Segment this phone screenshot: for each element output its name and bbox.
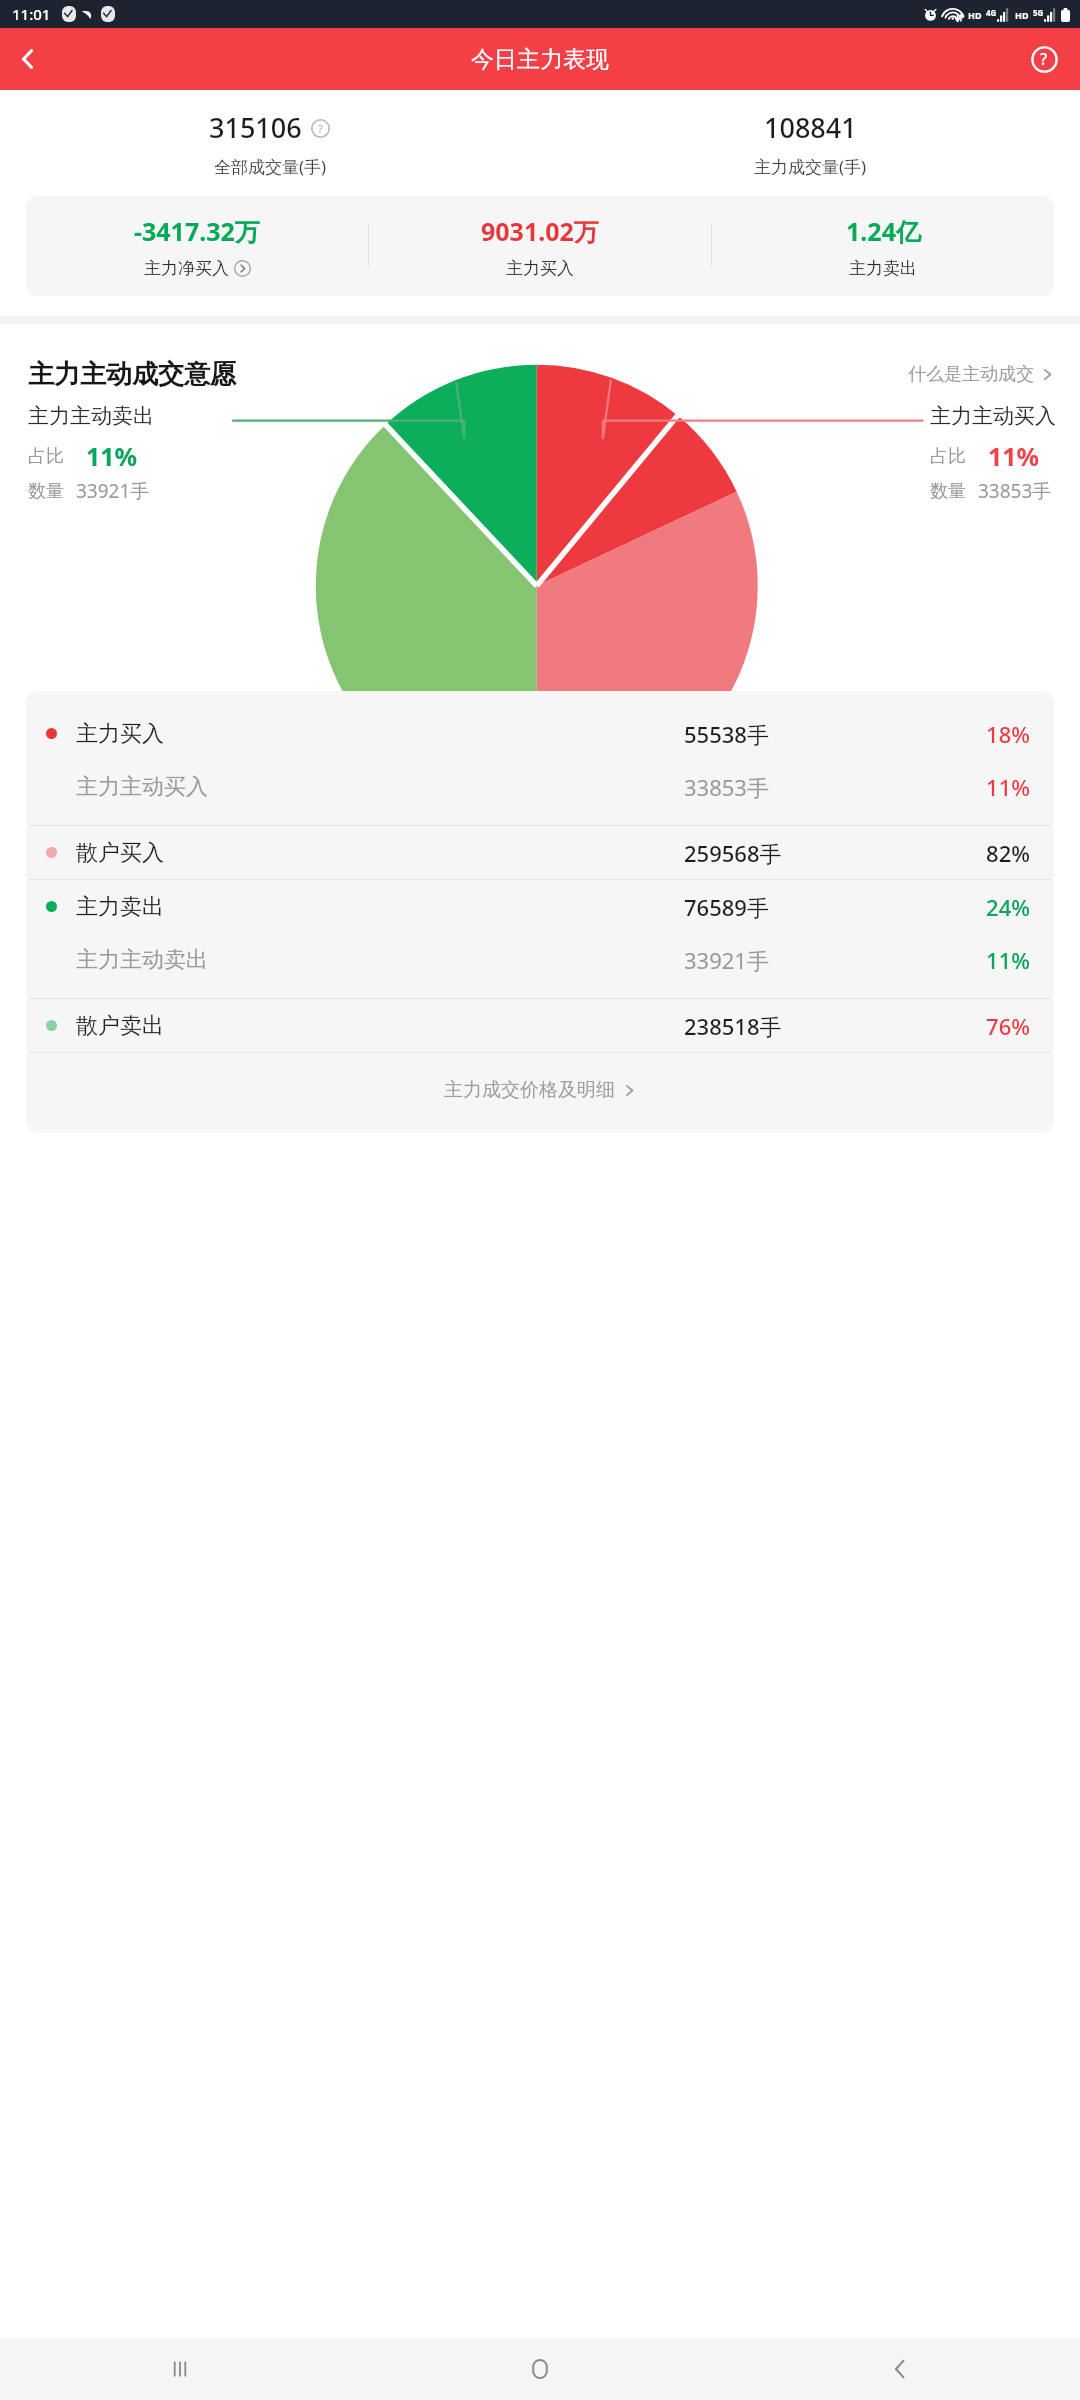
staticText: 11:01 — [12, 4, 51, 24]
staticText: 数量 — [28, 480, 64, 503]
staticText: 1.24亿 — [846, 214, 921, 248]
button[interactable]: -3417.32万 — [26, 196, 368, 296]
button[interactable]: 主力成交价格及明细 — [26, 1053, 1054, 1127]
button[interactable]: 散户买入 — [26, 826, 1054, 879]
staticText: 238518手 — [684, 1011, 782, 1041]
button[interactable]: 什么是主动成交 — [904, 359, 1058, 390]
staticText: 33921手 — [76, 478, 150, 504]
staticText: 55538手 — [684, 719, 769, 749]
staticText: 11% — [986, 945, 1030, 975]
staticText: 4G — [986, 7, 997, 18]
button[interactable]: Info — [309, 117, 331, 139]
staticText: 占比 — [28, 445, 64, 468]
button[interactable]: Help — [1020, 35, 1068, 83]
staticText: 主力主动买入 — [930, 403, 1056, 429]
staticText: 主力买入 — [76, 720, 164, 748]
staticText: 315106 — [209, 109, 302, 146]
staticText: HD — [968, 9, 982, 21]
staticText: 什么是主动成交 — [908, 363, 1034, 386]
staticText: 散户卖出 — [76, 1012, 164, 1040]
button[interactable]: Home — [360, 2338, 720, 2400]
staticText: 全部成交量(手) — [214, 155, 327, 178]
staticText: ? — [1040, 48, 1048, 70]
staticText: 108841 — [764, 109, 857, 146]
staticText: 33853手 — [684, 772, 769, 802]
button[interactable]: 主力主动卖出 — [26, 933, 1054, 986]
button[interactable]: Recent apps — [0, 2338, 360, 2400]
staticText: 9031.02万 — [481, 214, 599, 248]
staticText: 主力主动卖出 — [28, 403, 154, 429]
staticText: 11% — [986, 772, 1030, 802]
button[interactable]: 主力卖出 — [26, 880, 1054, 933]
staticText: 主力成交价格及明细 — [444, 1078, 615, 1102]
staticText: 82% — [986, 838, 1030, 868]
staticText: 占比 — [930, 445, 966, 468]
staticText: 18% — [986, 719, 1030, 749]
staticText: 主力买入 — [506, 258, 574, 279]
staticText: 33853手 — [978, 478, 1052, 504]
button[interactable]: 主力主动买入 — [26, 760, 1054, 813]
staticText: 主力净买入 — [144, 258, 229, 279]
button[interactable]: Back — [0, 31, 56, 87]
staticText: 数量 — [930, 480, 966, 503]
staticText: 24% — [986, 892, 1030, 922]
staticText: 主力卖出 — [76, 893, 164, 921]
staticText: 76% — [986, 1011, 1030, 1041]
staticText: HD — [1015, 9, 1029, 21]
staticText: 主力主动买入 — [76, 773, 208, 801]
staticText: 259568手 — [684, 838, 782, 868]
staticText: 11% — [86, 439, 138, 473]
staticText: 76589手 — [684, 892, 769, 922]
staticText: 主力主动成交意愿 — [28, 358, 236, 391]
staticText: 主力主动卖出 — [76, 946, 208, 974]
staticText: 今日主力表现 — [471, 45, 609, 74]
staticText: 5G — [1033, 7, 1044, 18]
staticText: -3417.32万 — [134, 214, 260, 248]
staticText: 11% — [988, 439, 1040, 473]
button[interactable]: Back — [720, 2338, 1080, 2400]
staticText: ? — [318, 121, 323, 136]
staticText: 33921手 — [684, 945, 769, 975]
staticText: 散户买入 — [76, 839, 164, 867]
staticText: 主力成交量(手) — [754, 155, 867, 178]
staticText: 主力卖出 — [849, 258, 917, 279]
button[interactable]: 主力买入 — [26, 707, 1054, 760]
button[interactable]: 散户卖出 — [26, 999, 1054, 1052]
